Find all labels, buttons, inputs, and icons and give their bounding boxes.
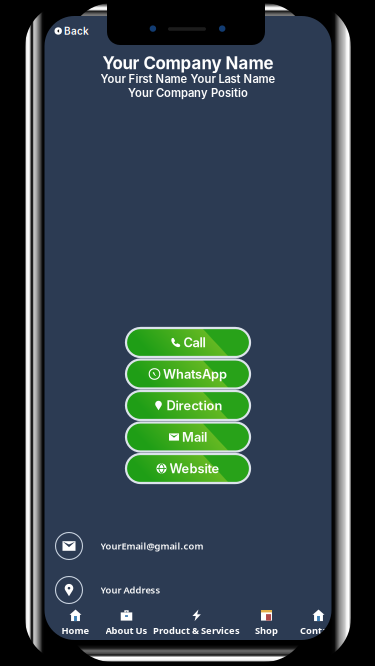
staticText: WhatsApp (163, 366, 227, 382)
staticText: Website (169, 461, 219, 476)
staticText: YourEmail@gmail.com (100, 540, 203, 552)
button[interactable]: WhatsApp (126, 359, 250, 388)
button[interactable]: YourEmail@gmail.com (55, 532, 275, 560)
staticText: Product & Services (153, 624, 240, 637)
staticText: Direction (166, 398, 222, 413)
button[interactable]: Contact (292, 608, 344, 638)
button[interactable]: Website (126, 454, 250, 483)
staticText: Contact (300, 624, 337, 637)
staticText: Your First Name Your Last Name (100, 72, 275, 86)
staticText: Your Address (100, 584, 160, 596)
button[interactable]: Home (50, 608, 100, 638)
staticText: About Us (105, 624, 147, 637)
button[interactable]: Back (54, 24, 89, 38)
button[interactable]: Direction (126, 391, 250, 420)
staticText: Shop (255, 624, 278, 637)
staticText: Mail (182, 429, 207, 445)
staticText: Back (64, 25, 89, 37)
button[interactable]: Mail (126, 422, 250, 451)
staticText: Home (61, 624, 89, 637)
button[interactable]: Call (126, 328, 250, 357)
staticText: Call (183, 335, 205, 350)
staticText: Your Company Positio (128, 86, 248, 100)
button[interactable]: Product & Services (152, 608, 240, 638)
staticText: Your Company Name (102, 53, 273, 73)
button[interactable]: About Us (100, 608, 152, 638)
button[interactable]: Shop (240, 608, 292, 638)
button[interactable]: Your Address (55, 576, 275, 604)
